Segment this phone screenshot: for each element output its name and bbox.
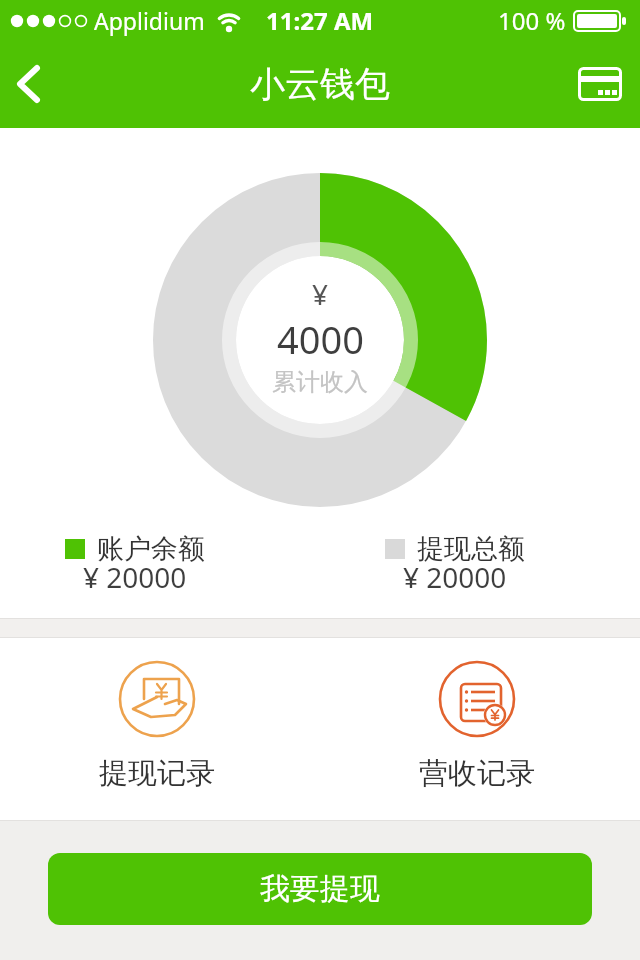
staticText: ¥ 20000	[403, 558, 507, 596]
button[interactable]: 我要提现	[48, 853, 592, 925]
staticText: 账户余额	[97, 532, 205, 566]
staticText: 我要提现	[260, 870, 380, 908]
staticText: ¥ 20000	[83, 558, 187, 596]
staticText: 100 %	[498, 4, 566, 37]
staticText: 小云钱包	[250, 62, 390, 106]
staticText: 累计收入	[272, 367, 368, 397]
button[interactable]: 提现记录	[97, 659, 217, 792]
button[interactable]	[572, 56, 628, 112]
staticText: ¥	[312, 275, 329, 313]
staticText: Applidium	[94, 5, 205, 36]
button[interactable]	[8, 56, 48, 112]
staticText: 11:27 AM	[266, 4, 374, 37]
staticText: 4000	[277, 313, 364, 365]
staticText: 营收记录	[419, 755, 535, 792]
button[interactable]: 营收记录	[417, 659, 537, 792]
staticText: 提现总额	[417, 532, 525, 566]
staticText: 提现记录	[99, 755, 215, 792]
